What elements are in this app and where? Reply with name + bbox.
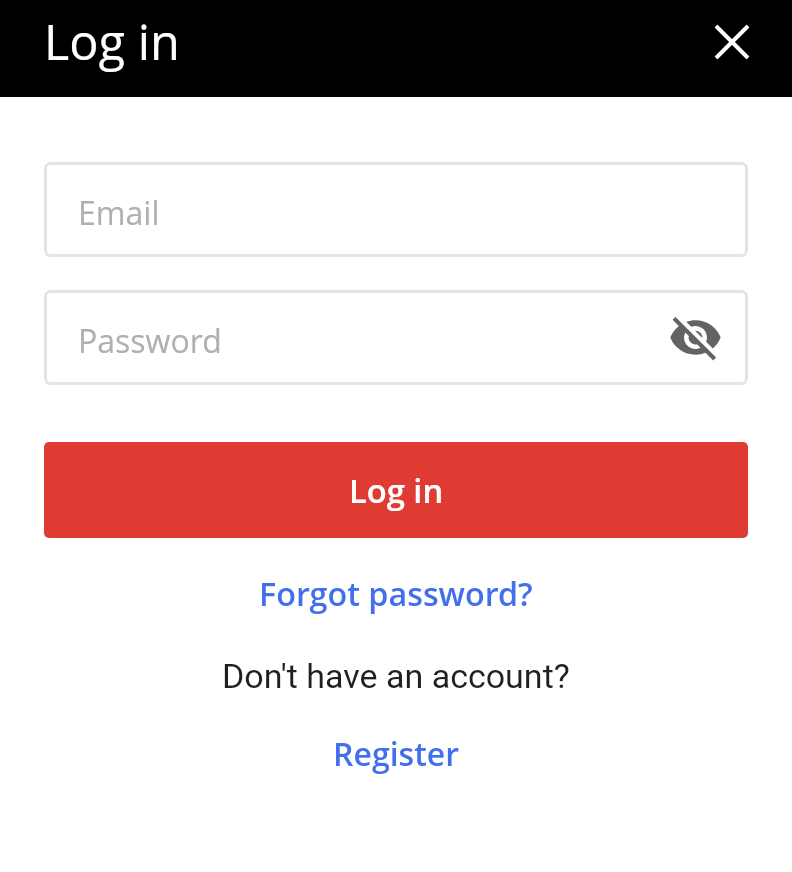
staticText: Register xyxy=(333,732,459,776)
button[interactable]: Log in xyxy=(44,442,748,538)
staticText: Email xyxy=(78,191,160,235)
staticText: Log in xyxy=(349,468,444,513)
button[interactable]: Forgot password? xyxy=(0,562,792,626)
button[interactable]: Password xyxy=(44,290,748,385)
button[interactable]: Show password xyxy=(662,304,728,370)
staticText: Password xyxy=(78,319,222,363)
staticText: Don't have an account? xyxy=(222,656,570,696)
button[interactable]: Register xyxy=(0,722,792,786)
staticText: Log in xyxy=(44,8,180,74)
button[interactable]: Email xyxy=(44,162,748,257)
staticText: Forgot password? xyxy=(259,571,533,615)
button[interactable]: Close xyxy=(702,12,762,72)
